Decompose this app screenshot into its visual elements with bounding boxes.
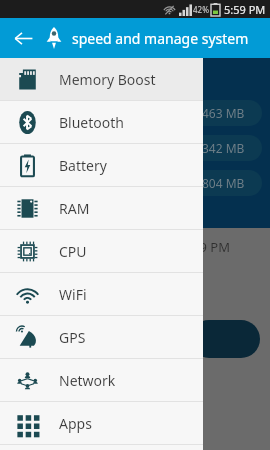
button[interactable]: RAM	[0, 187, 203, 229]
button[interactable]: 804 MB	[150, 170, 262, 196]
staticText: CPU	[59, 242, 87, 261]
staticText: :9 PM	[196, 238, 230, 256]
button[interactable]: Network	[0, 359, 203, 401]
staticText: Battery	[59, 156, 107, 175]
staticText: GPS	[59, 328, 86, 347]
staticText: 5:59 PM	[224, 2, 266, 17]
staticText: Memory Boost	[59, 70, 156, 89]
staticText: Apps	[59, 414, 92, 433]
staticText: 463 MB	[202, 105, 245, 121]
button[interactable]: Back	[10, 25, 36, 51]
button[interactable]: 342 MB	[150, 135, 262, 161]
staticText: RAM	[59, 199, 90, 218]
button[interactable]: 463 MB	[150, 100, 262, 126]
button[interactable]: CPU	[0, 230, 203, 272]
staticText: speed and manage system	[72, 29, 249, 48]
staticText: Network	[59, 371, 116, 390]
staticText: WiFi	[59, 285, 87, 304]
staticText: 342 MB	[202, 140, 245, 156]
staticText: 42%	[193, 4, 209, 15]
button[interactable]: GPS	[0, 316, 203, 358]
staticText: Bluetooth	[59, 113, 124, 132]
staticText: 804 MB	[202, 175, 245, 191]
button[interactable]: Action	[190, 320, 260, 358]
button[interactable]: Memory Boost	[0, 58, 203, 100]
button[interactable]: Apps	[0, 402, 203, 444]
button[interactable]: WiFi	[0, 273, 203, 315]
button[interactable]: Battery	[0, 144, 203, 186]
button[interactable]: Bluetooth	[0, 101, 203, 143]
